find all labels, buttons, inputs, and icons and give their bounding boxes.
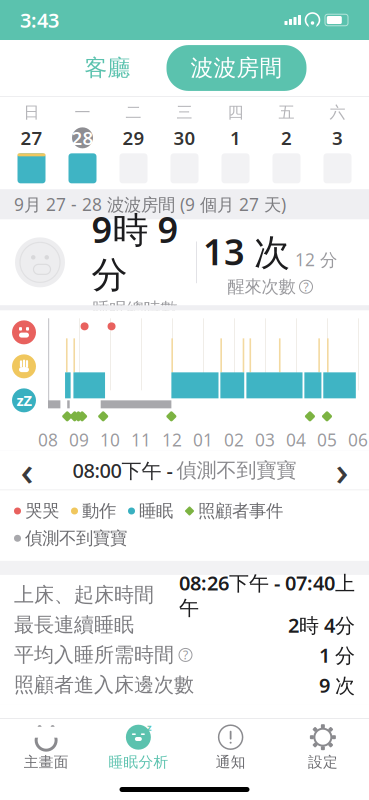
staticText: 10 [100, 428, 120, 451]
button[interactable]: Previous [0, 451, 54, 489]
staticText: 三 [176, 103, 192, 122]
button[interactable]: 四 [210, 103, 261, 183]
staticText: Cube 透過影像辨識偵測睡眠事件，並自動幫你計算每天寶寶睡 [14, 715, 329, 756]
staticText: z [147, 721, 152, 733]
staticText: 9 次 [319, 672, 355, 698]
staticText: 六 [329, 103, 345, 122]
staticText: 哭哭 [25, 500, 59, 522]
staticText: 06 [348, 428, 368, 451]
staticText: 睡眠分析 [108, 753, 168, 771]
staticText: 08:00下午 - [72, 457, 172, 484]
staticText: 08:26下午 - 07:40上午 [179, 569, 355, 620]
staticText: 9月 27 - 28 波波房間 (9 個月 27 天) [14, 193, 286, 216]
button[interactable]: 六 [312, 103, 363, 183]
staticText: 3 [332, 125, 343, 150]
staticText: 29 [122, 125, 144, 150]
staticText: 28 [71, 125, 93, 150]
staticText: ? [183, 647, 188, 663]
staticText: 30 [173, 125, 195, 150]
staticText: 13 次 [203, 227, 290, 275]
staticText: 9時 9分 [91, 205, 178, 297]
staticText: 客廳 [84, 54, 130, 82]
staticText: 波波房間 [190, 54, 282, 82]
staticText: 08 [38, 428, 58, 451]
button[interactable]: 客廳 [62, 46, 152, 90]
staticText: › [335, 444, 348, 497]
button[interactable]: z [92, 720, 184, 770]
button[interactable]: 一 [57, 103, 108, 183]
button[interactable]: 五 [261, 103, 312, 183]
staticText: 四 [227, 103, 243, 122]
staticText: 1 分 [319, 642, 355, 668]
button[interactable]: 三 [159, 103, 210, 183]
staticText: 主畫面 [24, 753, 69, 771]
staticText: 1 [230, 125, 241, 150]
staticText: 平均入睡所需時間 [14, 643, 174, 667]
staticText: 12 分 [295, 248, 337, 271]
button[interactable]: 日 [6, 103, 57, 183]
staticText: 睡眠總時數 [92, 298, 177, 319]
staticText: 11 [131, 428, 151, 451]
staticText: 05 [317, 428, 337, 451]
staticText: 27 [20, 125, 42, 150]
staticText: 04 [286, 428, 306, 451]
button[interactable]: 主畫面 [0, 720, 92, 770]
button[interactable]: 通知 [184, 720, 277, 770]
button[interactable]: 二 [108, 103, 159, 183]
button[interactable]: 波波房間 [166, 45, 306, 91]
staticText: 最長連續睡眠 [14, 613, 134, 637]
staticText: 通知 [216, 753, 246, 771]
staticText: 日 [23, 103, 39, 122]
staticText: 照顧者進入床邊次數 [14, 673, 194, 697]
staticText: 醒來次數 [227, 276, 295, 297]
staticText: 照顧者事件 [198, 500, 283, 522]
staticText: 偵測不到寶寶 [25, 528, 127, 549]
staticText: 02 [224, 428, 244, 451]
staticText: 二 [125, 103, 141, 122]
staticText: 2時 4分 [288, 612, 355, 638]
staticText: 設定 [308, 753, 338, 771]
staticText: 偵測不到寶寶 [176, 458, 296, 483]
staticText: 上床、起床時間 [14, 583, 154, 607]
staticText: ? [303, 279, 308, 295]
staticText: 睡眠 [139, 500, 173, 522]
staticText: ‹ [20, 444, 33, 497]
staticText: 五 [278, 103, 294, 122]
staticText: 一 [74, 103, 90, 122]
staticText: 01 [193, 428, 213, 451]
staticText: 2 [281, 125, 292, 150]
staticText: zZ [16, 391, 31, 410]
staticText: 3:43 [20, 7, 59, 33]
staticText: 12 [162, 428, 182, 451]
button[interactable]: 設定 [277, 720, 369, 770]
staticText: 動作 [82, 500, 116, 522]
staticText: 03 [255, 428, 275, 451]
staticText: 09 [69, 428, 89, 451]
button[interactable]: Next [315, 451, 369, 489]
